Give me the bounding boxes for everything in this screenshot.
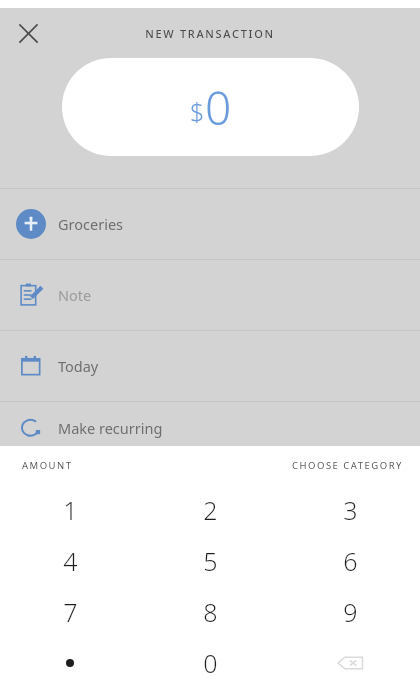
button[interactable]: 6 — [280, 535, 420, 586]
staticText: CHOOSE CATEGORY — [292, 459, 403, 472]
button[interactable]: Backspace — [280, 637, 420, 688]
staticText: Make recurring — [58, 418, 163, 438]
button[interactable]: $ — [62, 58, 359, 156]
button[interactable]: Make recurring — [0, 402, 420, 454]
staticText: Groceries — [58, 214, 124, 234]
staticText: 4 — [63, 544, 78, 578]
button[interactable]: 4 — [0, 535, 140, 586]
staticText: 0 — [205, 76, 232, 139]
button[interactable]: 9 — [280, 586, 420, 637]
staticText: 0 — [203, 646, 218, 680]
button[interactable]: 1 — [0, 484, 140, 535]
staticText: 5 — [203, 544, 218, 578]
button[interactable]: 3 — [280, 484, 420, 535]
button[interactable]: Decimal point — [0, 637, 140, 688]
staticText: $ — [190, 94, 205, 128]
staticText: 9 — [343, 595, 358, 629]
staticText: 6 — [343, 544, 358, 578]
button[interactable]: 0 — [140, 637, 280, 688]
button[interactable]: Note — [0, 260, 420, 330]
button[interactable]: Close — [8, 13, 48, 53]
button[interactable]: AMOUNT — [22, 459, 73, 472]
button[interactable]: 2 — [140, 484, 280, 535]
staticText: NEW TRANSACTION — [145, 26, 275, 41]
button[interactable]: 7 — [0, 586, 140, 637]
button[interactable]: 8 — [140, 586, 280, 637]
staticText: 8 — [203, 595, 218, 629]
button[interactable]: Today — [0, 331, 420, 401]
staticText: 2 — [203, 493, 218, 527]
staticText: Note — [58, 285, 92, 305]
staticText: Today — [58, 356, 99, 376]
staticText: AMOUNT — [22, 459, 73, 472]
button[interactable]: CHOOSE CATEGORY — [292, 459, 403, 472]
button[interactable]: 5 — [140, 535, 280, 586]
staticText: 3 — [343, 493, 358, 527]
staticText: 1 — [63, 493, 78, 527]
button[interactable]: Groceries — [0, 189, 420, 259]
staticText: 7 — [63, 595, 78, 629]
